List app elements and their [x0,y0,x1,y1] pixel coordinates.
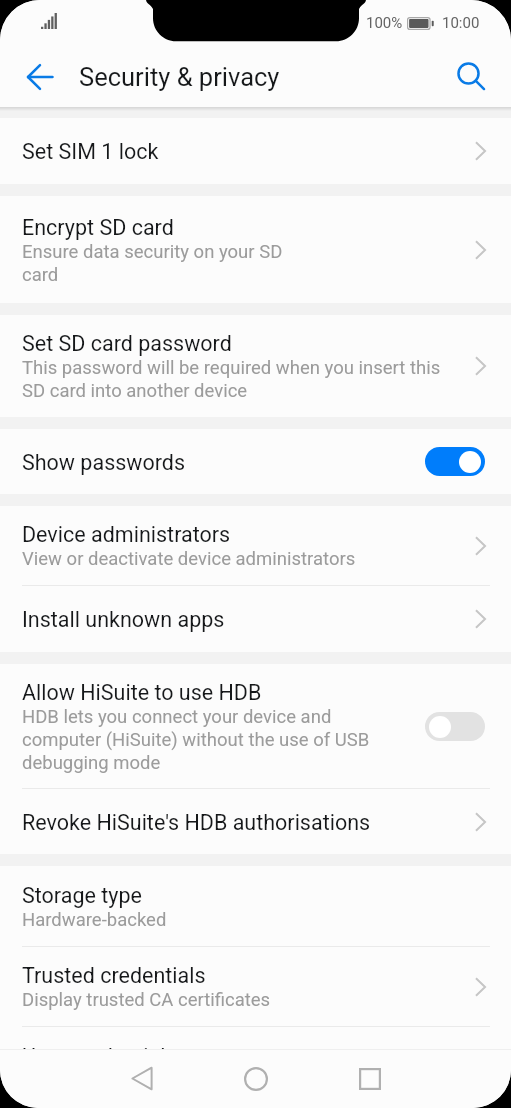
staticText: Trusted credentials [22,962,206,988]
staticText: User credentials [22,1043,177,1049]
button[interactable]: Set SIM 1 lock [0,118,511,184]
button[interactable]: Switch on [425,447,485,476]
button[interactable]: Back [97,1049,187,1108]
button[interactable]: Home [211,1049,301,1108]
staticText: Display trusted CA certificates [22,988,271,1011]
button[interactable]: Storage type [0,866,511,946]
button[interactable]: Switch off [425,712,485,741]
button[interactable]: Back [14,46,66,107]
staticText: 100% [366,14,403,32]
staticText: Device administrators [22,521,231,547]
button[interactable]: Install unknown apps [0,586,511,652]
button[interactable]: Trusted credentials [0,947,511,1026]
staticText: Hardware-backed [22,908,167,931]
button[interactable]: Set SD card password [0,315,511,417]
button[interactable]: Revoke HiSuite's HDB authorisations [0,789,511,854]
button[interactable]: Allow HiSuite to use HDB [0,664,511,788]
staticText: Install unknown apps [22,606,225,632]
staticText: Security & privacy [79,62,280,92]
staticText: HDB lets you connect your device and com… [22,705,370,774]
staticText: Ensure data security on your SD card [22,240,283,286]
staticText: 10:00 [442,14,480,32]
button[interactable]: User credentials [0,1027,511,1049]
staticText: This password will be required when you … [22,356,441,402]
staticText: Encrypt SD card [22,214,174,240]
staticText: Storage type [22,882,142,908]
staticText: Set SIM 1 lock [22,138,159,164]
button[interactable]: Search [446,46,498,107]
button[interactable]: Show passwords [0,429,511,494]
staticText: Allow HiSuite to use HDB [22,679,262,705]
staticText: View or deactivate device administrators [22,547,356,570]
staticText: Show passwords [22,449,186,475]
staticText: Revoke HiSuite's HDB authorisations [22,809,371,835]
button[interactable]: Recent apps [325,1049,415,1108]
staticText: Set SD card password [22,330,232,356]
button[interactable]: Device administrators [0,506,511,585]
button[interactable]: Encrypt SD card [0,196,511,303]
